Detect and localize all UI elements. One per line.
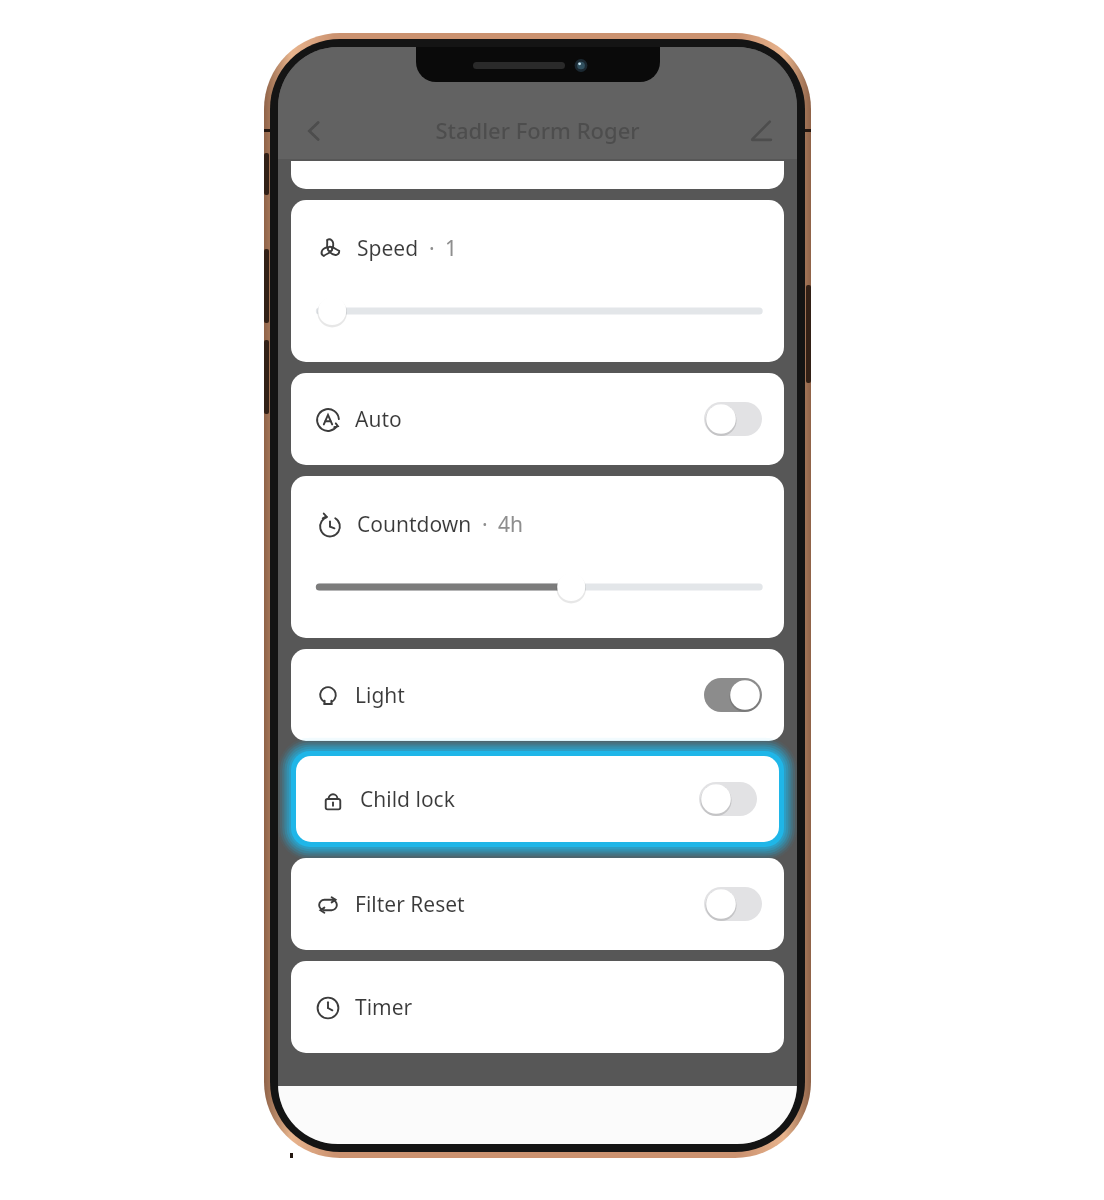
staticText: Auto <box>355 405 402 434</box>
staticText: Filter Reset <box>355 890 465 919</box>
button[interactable]: Speed <box>291 200 784 362</box>
staticText: Countdown <box>357 510 472 539</box>
staticText: 4h <box>498 510 523 539</box>
button[interactable]: Light <box>291 649 784 741</box>
button[interactable]: Filter Reset toggle <box>704 887 762 921</box>
staticText: · <box>482 510 488 539</box>
staticText: · <box>429 234 435 263</box>
button[interactable]: Child lock toggle <box>699 782 757 816</box>
staticText: Timer <box>355 993 413 1022</box>
button[interactable]: Countdown <box>291 476 784 638</box>
button[interactable]: Child lock <box>296 756 779 842</box>
button[interactable]: Auto toggle <box>704 402 762 436</box>
staticText: 1 <box>445 234 458 263</box>
button[interactable]: Filter Reset <box>291 858 784 950</box>
button[interactable]: Timer <box>291 961 784 1053</box>
staticText: Stadler Form Roger <box>435 115 640 145</box>
staticText: Child lock <box>360 785 455 814</box>
button[interactable]: Auto <box>291 373 784 465</box>
staticText: Light <box>355 681 405 710</box>
button[interactable]: Light toggle <box>704 678 762 712</box>
staticText: Speed <box>357 234 419 263</box>
button[interactable]: Back <box>290 107 338 155</box>
button[interactable] <box>291 161 784 189</box>
button[interactable]: Edit <box>737 107 785 155</box>
